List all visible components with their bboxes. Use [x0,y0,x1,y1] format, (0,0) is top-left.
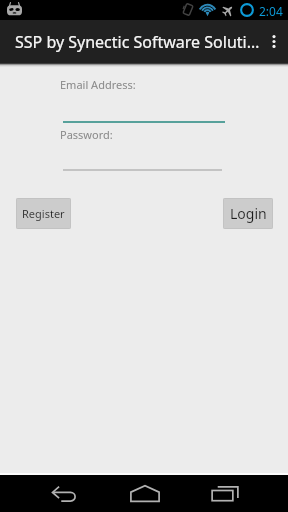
staticText: 2:04 [259,3,283,19]
staticText: Register [22,206,65,221]
button[interactable]: Email address input [63,89,225,123]
staticText: Login [230,204,267,223]
button[interactable]: Register [16,198,71,229]
button[interactable]: More options [263,20,288,63]
button[interactable]: Recent apps [201,475,249,512]
staticText: SSP by Synectic Software Solutions [15,31,263,53]
button[interactable]: Login [223,198,273,229]
button[interactable]: Home [121,475,169,512]
button[interactable]: Password input [63,139,222,171]
staticText: Email Address: [60,77,136,92]
button[interactable]: Back [40,475,88,512]
staticText: Password: [60,127,113,142]
